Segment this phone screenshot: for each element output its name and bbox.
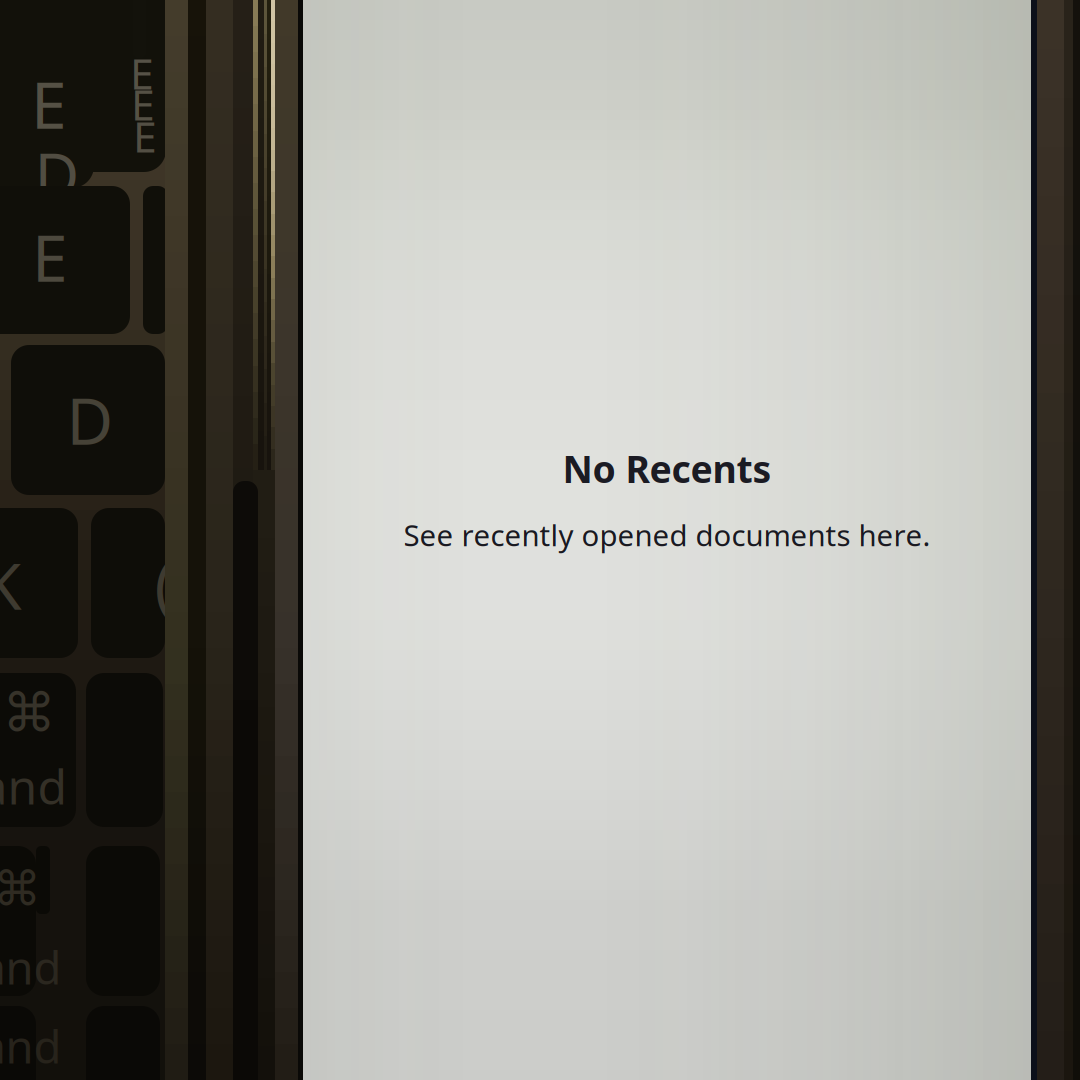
staticText: See recently opened documents here. (403, 515, 930, 554)
staticText: and (0, 937, 61, 997)
staticText: No Recents (562, 444, 771, 493)
staticText: ⌘ (0, 862, 41, 916)
staticText: ⌘ (2, 683, 55, 743)
staticText: and (0, 754, 67, 818)
staticText: K (0, 542, 22, 627)
staticText: E (32, 214, 68, 299)
staticText: E (130, 45, 154, 101)
staticText: D (66, 377, 113, 462)
staticText: and (0, 1016, 61, 1076)
staticText: E (133, 108, 157, 164)
staticText: D (34, 133, 79, 215)
staticText: E (131, 76, 155, 132)
staticText: ( (154, 541, 173, 626)
staticText: E (31, 61, 67, 146)
